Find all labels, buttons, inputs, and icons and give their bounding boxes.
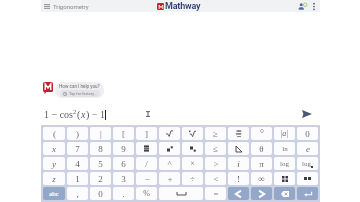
button[interactable]: 6 bbox=[113, 157, 134, 170]
button[interactable]: ≤ bbox=[205, 142, 226, 155]
button[interactable]: π bbox=[251, 157, 272, 170]
button[interactable]: [ bbox=[113, 127, 134, 140]
button[interactable] bbox=[182, 142, 203, 155]
button[interactable]: Submit bbox=[298, 105, 316, 123]
staticText: ( bbox=[77, 109, 81, 120]
staticText: | bbox=[100, 129, 102, 139]
staticText: ÷ bbox=[190, 174, 195, 184]
button[interactable]: abc bbox=[43, 187, 65, 200]
button[interactable]: x bbox=[43, 142, 65, 155]
staticText: 4 bbox=[75, 159, 80, 169]
button[interactable] bbox=[159, 187, 203, 200]
staticText: x bbox=[81, 109, 86, 120]
button[interactable]: ) bbox=[67, 127, 88, 140]
button[interactable]: ≥ bbox=[205, 127, 226, 140]
staticText: . bbox=[122, 189, 125, 199]
button[interactable]: log bbox=[274, 157, 295, 170]
button[interactable]: 9 bbox=[113, 142, 134, 155]
button[interactable]: 3 bbox=[113, 172, 134, 185]
button[interactable] bbox=[159, 127, 180, 140]
button[interactable]: % bbox=[136, 187, 157, 200]
button[interactable]: 5 bbox=[90, 157, 111, 170]
staticText: Mathway bbox=[165, 1, 201, 12]
button[interactable]: Trigonometry bbox=[41, 2, 92, 11]
button[interactable] bbox=[251, 187, 272, 200]
button[interactable]: | bbox=[90, 127, 111, 140]
button[interactable] bbox=[228, 127, 249, 140]
staticText: 1 − cos bbox=[44, 109, 73, 120]
staticText: y bbox=[52, 159, 56, 169]
button[interactable]: 8 bbox=[90, 142, 111, 155]
staticText: θ bbox=[259, 144, 264, 154]
button[interactable]: θ bbox=[251, 142, 272, 155]
staticText: 2 bbox=[73, 108, 77, 115]
staticText: ) − 1 bbox=[86, 109, 105, 120]
staticText: = bbox=[213, 189, 219, 199]
staticText: z bbox=[52, 174, 56, 184]
button[interactable] bbox=[136, 142, 157, 155]
staticText: 2 bbox=[98, 174, 103, 184]
staticText: ln bbox=[282, 145, 288, 153]
button[interactable]: ^ bbox=[159, 157, 180, 170]
staticText: How can I help you? bbox=[59, 84, 100, 89]
button[interactable] bbox=[228, 142, 249, 155]
button[interactable]: |a| bbox=[274, 127, 295, 140]
staticText: i bbox=[237, 159, 240, 169]
staticText: ^ bbox=[167, 159, 172, 169]
button[interactable]: > bbox=[205, 157, 226, 170]
staticText: ≥ bbox=[213, 129, 218, 139]
button[interactable]: / bbox=[136, 157, 157, 170]
button[interactable]: log bbox=[297, 157, 318, 170]
button[interactable]: 1 bbox=[67, 172, 88, 185]
button[interactable]: ln bbox=[274, 142, 295, 155]
button[interactable]: = bbox=[205, 187, 226, 200]
button[interactable]: 0 bbox=[90, 187, 111, 200]
staticText: e bbox=[306, 144, 310, 154]
button[interactable]: Account bbox=[296, 0, 309, 12]
button[interactable]: 7 bbox=[67, 142, 88, 155]
button[interactable]: , bbox=[67, 187, 88, 200]
staticText: ( bbox=[53, 129, 56, 139]
staticText: abc bbox=[49, 190, 59, 198]
staticText: < bbox=[213, 174, 219, 184]
button[interactable]: + bbox=[159, 172, 180, 185]
staticText: ) bbox=[76, 129, 79, 139]
button[interactable] bbox=[182, 127, 203, 140]
staticText: % bbox=[143, 189, 150, 198]
staticText: 6 bbox=[121, 159, 126, 169]
button[interactable]: ° bbox=[251, 127, 272, 140]
button[interactable] bbox=[297, 172, 318, 185]
button[interactable]: 4 bbox=[67, 157, 88, 170]
button[interactable]: z bbox=[43, 172, 65, 185]
button[interactable]: ] bbox=[136, 127, 157, 140]
button[interactable]: ! bbox=[228, 172, 249, 185]
staticText: + bbox=[167, 174, 173, 184]
button[interactable]: 0 bbox=[297, 127, 318, 140]
button[interactable]: Tap for history... bbox=[60, 90, 100, 97]
button[interactable] bbox=[228, 187, 249, 200]
button[interactable]: ∞ bbox=[251, 172, 272, 185]
button[interactable] bbox=[159, 142, 180, 155]
button[interactable] bbox=[274, 172, 295, 185]
staticText: 8 bbox=[98, 144, 103, 154]
staticText: [ bbox=[122, 129, 125, 139]
staticText: Trigonometry bbox=[53, 3, 89, 10]
staticText: > bbox=[213, 159, 219, 169]
button[interactable]: 2 bbox=[90, 172, 111, 185]
button[interactable] bbox=[297, 187, 318, 200]
button[interactable]: i bbox=[228, 157, 249, 170]
button[interactable]: < bbox=[205, 172, 226, 185]
button[interactable]: ÷ bbox=[182, 172, 203, 185]
staticText: ∞ bbox=[258, 174, 265, 184]
button[interactable]: × bbox=[182, 157, 203, 170]
button[interactable]: e bbox=[297, 142, 318, 155]
button[interactable]: More options bbox=[309, 0, 318, 12]
staticText: log bbox=[280, 160, 289, 168]
staticText: × bbox=[190, 159, 195, 168]
button[interactable]: y bbox=[43, 157, 65, 170]
button[interactable]: − bbox=[136, 172, 157, 185]
button[interactable]: ( bbox=[43, 127, 65, 140]
button[interactable]: . bbox=[113, 187, 134, 200]
staticText: x bbox=[52, 144, 56, 154]
button[interactable] bbox=[274, 187, 295, 200]
